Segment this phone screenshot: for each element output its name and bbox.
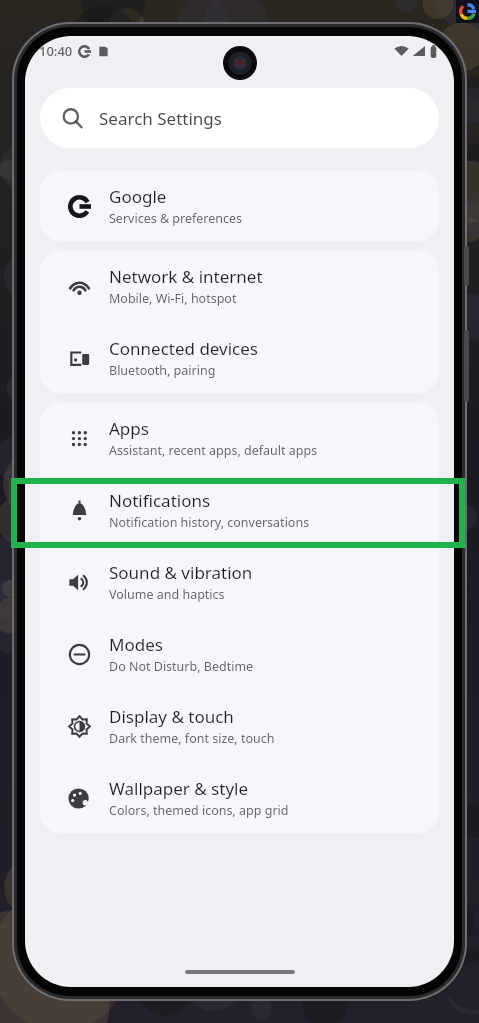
staticText: Sound & vibration <box>109 561 253 584</box>
button[interactable]: Notifications <box>40 475 439 545</box>
staticText: Colors, themed icons, app grid <box>109 802 289 819</box>
staticText: Google <box>109 185 167 208</box>
staticText: Notification history, conversations <box>109 514 310 531</box>
staticText: Volume and haptics <box>109 586 225 603</box>
staticText: Dark theme, font size, touch <box>109 730 275 747</box>
button[interactable]: Display & touch <box>40 691 439 761</box>
button[interactable]: Network & internet <box>40 251 439 321</box>
staticText: Search Settings <box>99 107 222 130</box>
staticText: Do Not Disturb, Bedtime <box>109 658 254 675</box>
staticText: Connected devices <box>109 337 259 360</box>
staticText: 10:40 <box>39 42 73 60</box>
button[interactable]: Apps <box>40 403 439 473</box>
staticText: Assistant, recent apps, default apps <box>109 442 318 459</box>
button[interactable]: Google <box>40 171 439 241</box>
staticText: Notifications <box>109 489 211 512</box>
button[interactable]: Search Settings <box>40 88 439 148</box>
staticText: Modes <box>109 633 163 656</box>
staticText: Network & internet <box>109 265 263 288</box>
staticText: Mobile, Wi-Fi, hotspot <box>109 290 237 307</box>
button[interactable]: Sound & vibration <box>40 547 439 617</box>
staticText: Apps <box>109 417 149 440</box>
button[interactable]: Wallpaper & style <box>40 763 439 833</box>
staticText: Services & preferences <box>109 210 243 227</box>
staticText: Wallpaper & style <box>109 777 249 800</box>
staticText: Bluetooth, pairing <box>109 362 216 379</box>
button[interactable]: Modes <box>40 619 439 689</box>
button[interactable]: Connected devices <box>40 323 439 393</box>
staticText: Display & touch <box>109 705 234 728</box>
